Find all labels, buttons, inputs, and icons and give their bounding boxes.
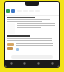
button[interactable]: Attachment (16, 48, 19, 51)
button[interactable]: Home (5, 60, 18, 67)
button[interactable]: Photo (7, 43, 14, 46)
button[interactable]: Docs (11, 9, 15, 13)
button[interactable]: Sheets (6, 9, 10, 13)
button[interactable]: Profile (45, 60, 59, 67)
button[interactable]: Library (31, 60, 45, 67)
button[interactable]: Photo (7, 47, 13, 50)
button[interactable]: Search (18, 60, 31, 67)
